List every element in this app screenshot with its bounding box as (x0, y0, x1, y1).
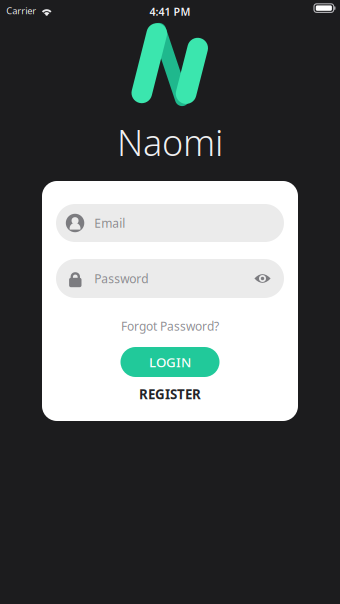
staticText: 4:41 PM (149, 5, 190, 19)
button[interactable]: LOGIN (120, 347, 219, 377)
staticText: Forgot Password? (121, 318, 219, 334)
staticText: Naomi (117, 118, 223, 166)
button[interactable]: REGISTER (139, 385, 201, 403)
staticText: Password (94, 270, 148, 286)
staticText: Carrier (6, 4, 36, 17)
staticText: Email (94, 215, 125, 231)
button[interactable]: Forgot Password? (121, 316, 219, 336)
button[interactable]: Show password (251, 269, 274, 287)
staticText: LOGIN (149, 353, 191, 371)
staticText: REGISTER (139, 385, 201, 403)
